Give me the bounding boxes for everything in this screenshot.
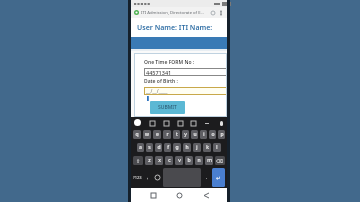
button[interactable]: Shift xyxy=(133,156,143,165)
button[interactable]: SUBMIT xyxy=(158,104,177,111)
button[interactable]: a xyxy=(137,143,144,152)
staticText: w xyxy=(145,131,149,138)
staticText: ?123 xyxy=(133,175,142,180)
staticText: q xyxy=(135,131,139,138)
button[interactable]: v xyxy=(175,156,183,165)
staticText: n xyxy=(197,157,201,164)
button[interactable]: d xyxy=(155,143,162,152)
staticText: e xyxy=(156,131,159,138)
staticText: , xyxy=(147,174,149,181)
button[interactable]: j xyxy=(193,143,201,152)
staticText: x xyxy=(158,157,161,164)
button[interactable]: Toolbar 1 xyxy=(163,120,169,126)
staticText: 44571341 xyxy=(146,69,172,76)
button[interactable]: z xyxy=(145,156,153,165)
button[interactable]: t xyxy=(173,130,180,139)
button[interactable]: x xyxy=(155,156,163,165)
staticText: s xyxy=(148,144,151,151)
staticText: User Name: ITI Name: xyxy=(137,23,213,33)
staticText: d xyxy=(157,144,161,151)
staticText: v xyxy=(178,157,181,164)
button[interactable]: Recents xyxy=(148,190,158,200)
staticText: ↵ xyxy=(216,175,221,181)
staticText: ⌫ xyxy=(216,158,224,164)
staticText: __/__/____ xyxy=(146,88,168,95)
staticText: ITI Admission, Directorate of E... xyxy=(141,10,204,16)
button[interactable]: 44571341 xyxy=(146,68,227,76)
staticText: g xyxy=(175,144,179,151)
staticText: One Time FORM No : xyxy=(144,59,195,66)
button[interactable]: Enter xyxy=(212,168,225,187)
staticText: m xyxy=(207,157,212,164)
button[interactable]: p xyxy=(218,130,225,139)
staticText: h xyxy=(185,144,189,151)
staticText: p xyxy=(220,131,224,138)
button[interactable]: g xyxy=(173,143,181,152)
button[interactable]: b xyxy=(185,156,193,165)
staticText: SUBMIT xyxy=(158,104,177,111)
staticText: j xyxy=(196,144,198,151)
staticText: a xyxy=(139,144,142,151)
staticText: Date of Birth : xyxy=(144,78,178,85)
button[interactable]: o xyxy=(209,130,216,139)
staticText: k xyxy=(206,144,209,151)
button[interactable]: k xyxy=(203,143,211,152)
button[interactable]: r xyxy=(163,130,171,139)
button[interactable]: ?123 xyxy=(133,168,142,187)
staticText: o xyxy=(211,131,215,138)
button[interactable]: i xyxy=(200,130,207,139)
staticText: ⇧ xyxy=(136,158,141,164)
staticText: c xyxy=(168,157,171,164)
staticText: u xyxy=(193,131,197,138)
button[interactable]: Emoji xyxy=(153,168,161,187)
button[interactable]: More options xyxy=(218,10,224,16)
button[interactable]: Gboard menu xyxy=(134,119,141,126)
staticText: l xyxy=(216,144,218,151)
staticText: i xyxy=(203,131,205,138)
button[interactable]: Toolbar 0 xyxy=(149,120,155,126)
button[interactable]: l xyxy=(213,143,221,152)
button[interactable]: w xyxy=(143,130,151,139)
button[interactable]: Home xyxy=(174,190,184,200)
button[interactable]: y xyxy=(182,130,189,139)
button[interactable]: . xyxy=(203,168,210,187)
button[interactable]: s xyxy=(146,143,153,152)
button[interactable]: n xyxy=(195,156,203,165)
button[interactable]: f xyxy=(164,143,171,152)
button[interactable]: h xyxy=(183,143,191,152)
staticText: . xyxy=(206,174,208,181)
staticText: z xyxy=(148,157,151,164)
button[interactable]: c xyxy=(165,156,173,165)
button[interactable]: __/__/____ xyxy=(146,87,227,95)
button[interactable]: , xyxy=(144,168,151,187)
button[interactable]: Toolbar 2 xyxy=(177,120,183,126)
staticText: t xyxy=(176,131,178,138)
button[interactable]: Back xyxy=(201,190,211,200)
button[interactable]: Voice input xyxy=(218,120,224,126)
button[interactable]: u xyxy=(191,130,198,139)
staticText: b xyxy=(187,157,191,164)
button[interactable]: q xyxy=(133,130,141,139)
staticText: y xyxy=(184,131,187,138)
button[interactable]: Backspace xyxy=(215,156,225,165)
button[interactable]: e xyxy=(153,130,161,139)
staticText: f xyxy=(167,144,169,151)
button[interactable]: Toolbar 3 xyxy=(190,120,196,126)
staticText: r xyxy=(166,131,169,138)
button[interactable]: m xyxy=(205,156,213,165)
